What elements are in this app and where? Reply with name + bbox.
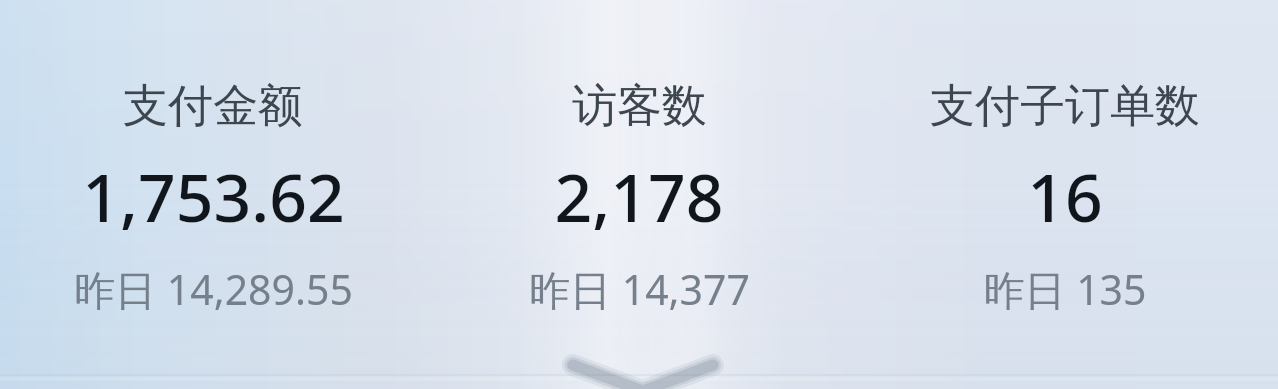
staticText: 昨日 14,289.55 [74, 261, 353, 317]
staticText: 访客数 [572, 78, 707, 135]
staticText: 昨日 135 [983, 261, 1147, 317]
staticText: 1,753.62 [82, 151, 345, 241]
staticText: 2,178 [554, 151, 724, 241]
button[interactable]: 访客数 [426, 0, 852, 389]
staticText: 昨日 14,377 [529, 261, 750, 317]
staticText: 支付金额 [123, 78, 303, 135]
button[interactable]: 支付金额 [0, 0, 426, 389]
button[interactable]: 支付子订单数 [852, 0, 1278, 389]
staticText: 支付子订单数 [930, 78, 1200, 135]
staticText: 16 [1027, 151, 1103, 241]
